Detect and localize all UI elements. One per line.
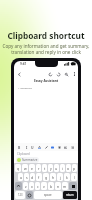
staticText: Copy any information and get summary, tr… — [2, 43, 90, 55]
button[interactable]: a — [18, 173, 23, 181]
staticText: Summarize — [22, 158, 38, 162]
staticText: U — [31, 145, 34, 150]
button[interactable]: Search — [63, 71, 69, 77]
staticText: p — [73, 166, 76, 171]
button[interactable]: c — [35, 182, 40, 190]
staticText: i — [62, 166, 63, 171]
staticText: return — [66, 193, 74, 197]
button[interactable]: q — [15, 164, 21, 172]
button[interactable]: x — [29, 182, 34, 190]
button[interactable]: Bold — [17, 145, 22, 150]
staticText: Clipboard shortcut — [0, 30, 92, 41]
button[interactable]: m — [62, 182, 68, 190]
button[interactable]: Italic — [24, 145, 29, 150]
button[interactable]: Undo — [47, 71, 53, 77]
button[interactable]: 123 — [15, 191, 25, 199]
button[interactable]: g — [43, 173, 49, 181]
button[interactable]: i — [60, 164, 65, 172]
staticText: m — [63, 184, 67, 189]
staticText: I — [26, 145, 28, 150]
staticText: w — [24, 166, 27, 171]
button[interactable]: Redo — [55, 71, 61, 77]
button[interactable]: return — [63, 191, 77, 199]
staticText: g — [45, 175, 48, 180]
button[interactable]: z — [23, 182, 28, 190]
button[interactable]: d — [30, 173, 35, 181]
button[interactable]: Text color — [37, 145, 42, 150]
button[interactable]: w — [22, 164, 28, 172]
button[interactable]: f — [36, 173, 42, 181]
staticText: Clipboard — [17, 152, 30, 156]
staticText: z — [25, 184, 27, 189]
button[interactable]: space — [34, 191, 62, 199]
button[interactable]: l — [71, 173, 77, 181]
button[interactable]: j — [57, 173, 63, 181]
staticText: b — [50, 184, 53, 189]
button[interactable]: h — [50, 173, 56, 181]
staticText: 9:41 — [20, 62, 27, 66]
button[interactable]: List — [70, 145, 75, 150]
staticText: a — [20, 175, 22, 180]
staticText: x — [31, 184, 33, 189]
staticText: r — [38, 166, 40, 171]
button[interactable]: b — [48, 182, 54, 190]
button[interactable]: Backspace — [69, 182, 77, 190]
staticText: l — [74, 175, 75, 180]
staticText: 1. Introduction — [18, 87, 32, 90]
staticText: space — [44, 193, 52, 197]
button[interactable]: r — [36, 164, 41, 172]
button[interactable]: Emoji — [26, 191, 33, 199]
button[interactable]: Align — [63, 145, 68, 150]
staticText: v — [43, 184, 45, 189]
button[interactable]: Delete — [57, 145, 62, 150]
button[interactable]: s — [24, 173, 29, 181]
button[interactable]: Image — [50, 145, 55, 150]
staticText: u — [55, 166, 58, 171]
button[interactable]: Highlight — [44, 145, 49, 150]
staticText: s — [26, 175, 28, 180]
staticText: 123 — [18, 193, 23, 197]
staticText: q — [17, 166, 20, 171]
staticText: e — [31, 166, 33, 171]
staticText: f — [38, 175, 40, 180]
staticText: Essay Assistant — [19, 79, 73, 83]
staticText: j — [60, 175, 61, 180]
staticText: y — [50, 166, 52, 171]
button[interactable]: e — [29, 164, 35, 172]
staticText: c — [37, 184, 39, 189]
button[interactable]: o — [66, 164, 71, 172]
button[interactable]: v — [41, 182, 47, 190]
button[interactable]: Shift — [15, 182, 22, 190]
staticText: n — [57, 184, 60, 189]
button[interactable]: u — [54, 164, 59, 172]
staticText: B — [18, 145, 21, 150]
button[interactable]: t — [42, 164, 47, 172]
button[interactable]: y — [48, 164, 53, 172]
button[interactable]: Underline — [30, 145, 35, 150]
button[interactable]: n — [55, 182, 61, 190]
button[interactable]: k — [64, 173, 70, 181]
staticText: o — [67, 166, 70, 171]
staticText: h — [52, 175, 55, 180]
button[interactable]: Back — [16, 71, 22, 77]
staticText: d — [31, 175, 34, 180]
button[interactable]: More options — [71, 71, 77, 77]
button[interactable]: Summarize — [17, 157, 38, 163]
staticText: t — [44, 166, 46, 171]
button[interactable]: p — [72, 164, 77, 172]
staticText: k — [66, 175, 68, 180]
